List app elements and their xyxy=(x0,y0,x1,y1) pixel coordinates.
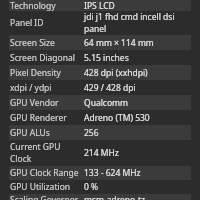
staticText: jdi j1 fhd cmd incell dsi panel xyxy=(84,11,191,35)
staticText: 428 dpi (xxhdpi) xyxy=(84,67,148,79)
staticText: GPU Clock Range xyxy=(10,167,79,179)
staticText: Qualcomm xyxy=(84,97,128,109)
button[interactable]: GPU Utilization xyxy=(9,180,191,194)
staticText: xdpi / ydpi xyxy=(10,82,52,94)
button[interactable]: Screen Diagonal xyxy=(9,50,191,65)
staticText: 5.15 inches xyxy=(84,52,129,64)
staticText: 64 mm × 114 mm xyxy=(84,37,154,49)
staticText: 256 xyxy=(84,127,99,139)
staticText: 133 - 624 MHz xyxy=(84,167,141,179)
button[interactable]: Technology xyxy=(9,0,191,11)
staticText: Current GPU Clock xyxy=(10,141,61,165)
button[interactable]: Scaling Governor xyxy=(9,194,191,200)
button[interactable]: xdpi / ydpi xyxy=(9,80,191,95)
staticText: GPU Vendor xyxy=(10,97,59,109)
staticText: Screen Size xyxy=(10,37,55,49)
staticText: Technology xyxy=(10,0,56,11)
staticText: 429 / 428 dpi xyxy=(84,82,136,94)
staticText: GPU Utilization xyxy=(10,181,71,193)
staticText: IPS LCD xyxy=(84,0,115,11)
staticText: Panel ID xyxy=(10,17,44,29)
button[interactable]: Pixel Density xyxy=(9,65,191,80)
staticText: Screen Diagonal xyxy=(10,52,75,64)
button[interactable]: GPU Renderer xyxy=(9,110,191,125)
button[interactable]: Current GPU Clock xyxy=(9,140,191,166)
button[interactable]: GPU Vendor xyxy=(9,95,191,110)
button[interactable]: GPU Clock Range xyxy=(9,166,191,180)
staticText: GPU ALUs xyxy=(10,127,50,139)
staticText: 214 MHz xyxy=(84,147,119,159)
staticText: 0 % xyxy=(84,181,99,193)
button[interactable]: Panel ID xyxy=(9,11,191,35)
staticText: Pixel Density xyxy=(10,67,61,79)
staticText: msm-adreno-tz xyxy=(84,194,146,200)
button[interactable]: GPU ALUs xyxy=(9,125,191,140)
staticText: GPU Renderer xyxy=(10,112,67,124)
staticText: Adreno (TM) 530 xyxy=(84,112,150,124)
button[interactable]: Screen Size xyxy=(9,35,191,50)
staticText: Scaling Governor xyxy=(10,194,79,200)
